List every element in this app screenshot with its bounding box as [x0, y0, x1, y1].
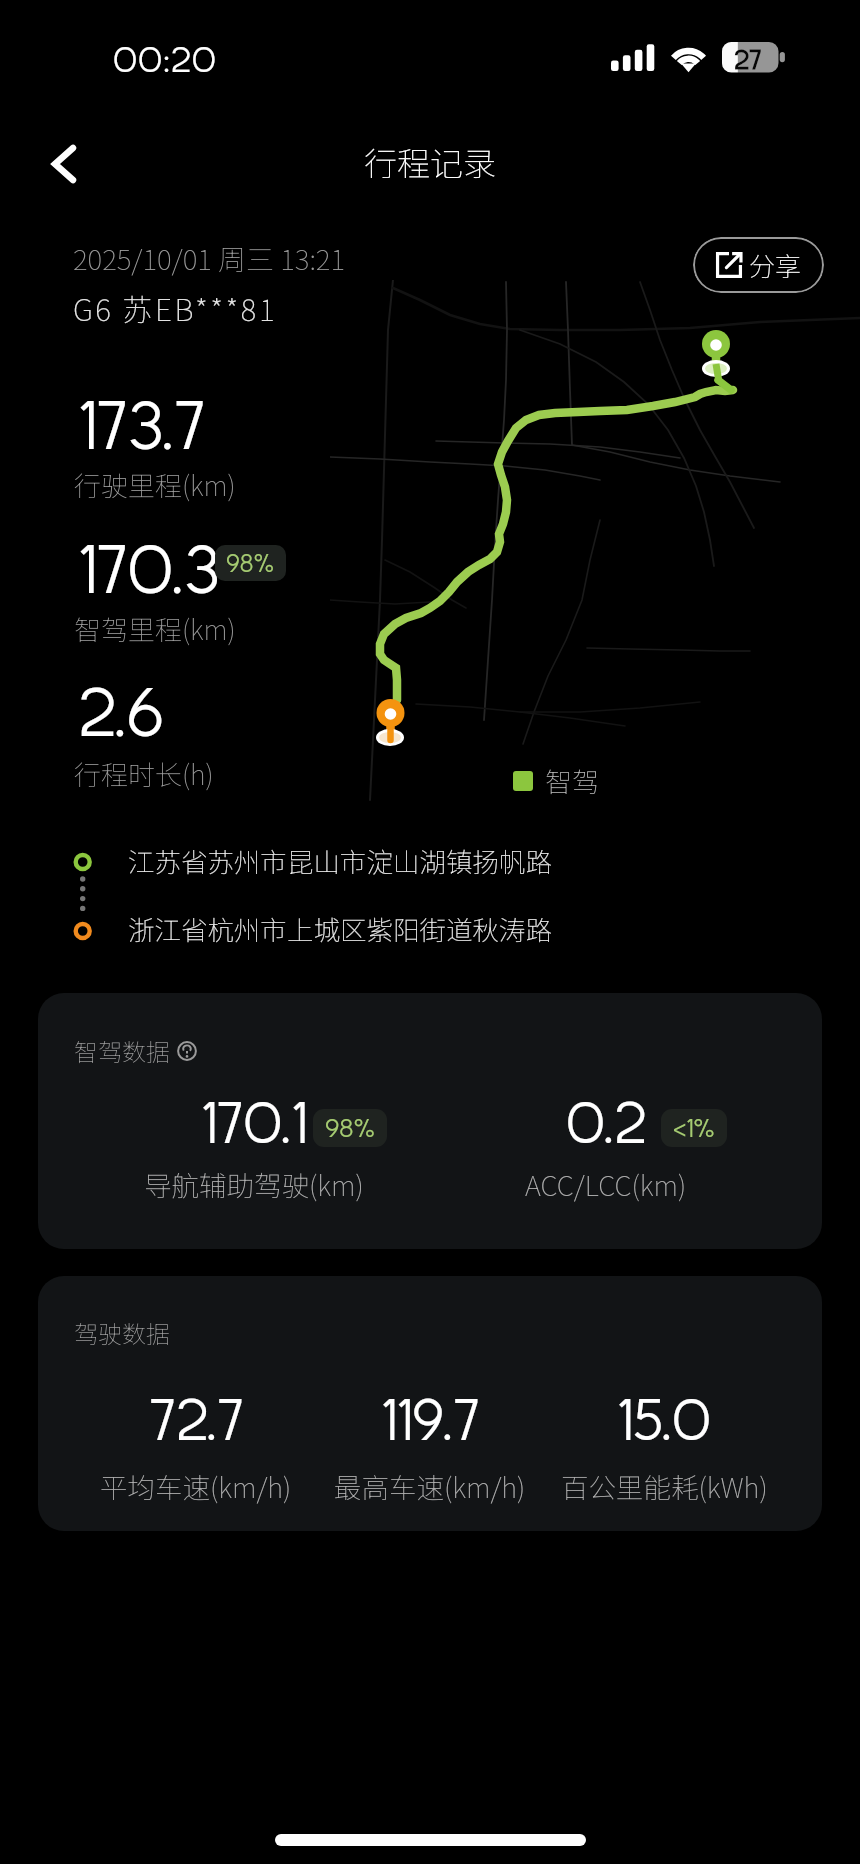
staticText: G6 苏EB***81 — [73, 286, 278, 329]
staticText: 2025/10/01 周三 13:21 — [73, 238, 346, 279]
staticText: 导航辅助驾驶(km) — [144, 1164, 364, 1204]
staticText: 平均车速(km/h) — [100, 1466, 292, 1506]
staticText: 行程记录 — [364, 138, 496, 186]
staticText: 119.7 — [381, 1386, 480, 1452]
staticText: 行驶里程(km) — [74, 465, 236, 504]
staticText: ACC/LCC(km) — [525, 1164, 687, 1204]
staticText: 江苏省苏州市昆山市淀山湖镇扬帆路 — [128, 841, 552, 879]
staticText: 2.6 — [78, 673, 164, 750]
staticText: 00:20 — [113, 38, 217, 79]
staticText: 最高车速(km/h) — [334, 1466, 526, 1506]
button[interactable]: 驾驶数据 — [38, 1276, 822, 1531]
staticText: 浙江省杭州市上城区紫阳街道秋涛路 — [128, 909, 552, 947]
staticText: 驾驶数据 — [74, 1315, 170, 1350]
staticText: 27 — [734, 44, 762, 75]
staticText: 智驾 — [545, 761, 599, 800]
button[interactable]: Back — [16, 116, 112, 212]
staticText: <1% — [673, 1113, 715, 1143]
staticText: 行程时长(h) — [74, 754, 214, 793]
staticText: 15.0 — [617, 1386, 711, 1452]
staticText: 98% — [226, 549, 275, 577]
staticText: 0.2 — [566, 1089, 647, 1155]
staticText: 170.3 — [78, 530, 220, 607]
staticText: 72.7 — [149, 1386, 244, 1452]
button[interactable]: 分享 — [693, 237, 824, 293]
staticText: 智驾里程(km) — [74, 609, 236, 648]
staticText: 分享 — [749, 246, 802, 284]
button[interactable]: 智驾数据 — [38, 993, 822, 1249]
staticText: 170.1 — [201, 1089, 307, 1155]
staticText: 百公里能耗(kWh) — [561, 1466, 768, 1506]
staticText: 智驾数据 — [74, 1033, 170, 1068]
staticText: 98% — [325, 1113, 375, 1143]
staticText: 173.7 — [78, 386, 206, 463]
